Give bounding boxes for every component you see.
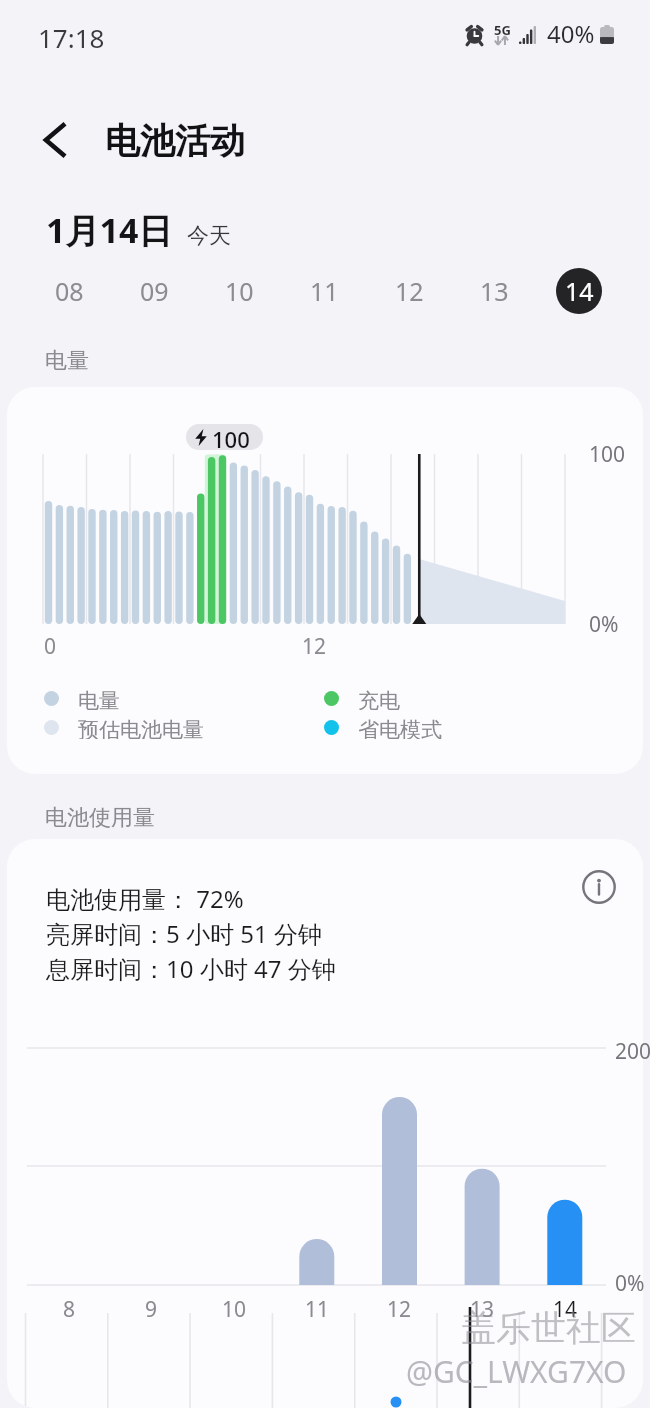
staticText: 200: [615, 1037, 650, 1066]
staticText: 100: [212, 424, 250, 450]
button[interactable]: 11: [301, 268, 347, 314]
staticText: 13: [480, 274, 509, 308]
staticText: 0: [44, 632, 57, 661]
staticText: 5G: [494, 21, 511, 39]
button[interactable]: 10: [216, 268, 262, 314]
button[interactable]: 12: [386, 268, 432, 314]
staticText: 12: [302, 632, 327, 661]
staticText: 14: [553, 1295, 578, 1321]
staticText: 1月14日: [46, 207, 173, 253]
staticText: 10: [225, 274, 254, 308]
staticText: 电池使用量： 72%: [46, 882, 244, 915]
staticText: 09: [140, 274, 169, 308]
staticText: 省电模式: [358, 717, 442, 739]
staticText: 电量: [45, 347, 89, 375]
staticText: 充电: [358, 688, 400, 710]
button[interactable]: 08: [46, 268, 92, 314]
staticText: @GC_LWXG7XO: [406, 1351, 627, 1392]
staticText: 电池使用量: [45, 804, 155, 832]
button[interactable]: 09: [131, 268, 177, 314]
staticText: 08: [55, 274, 84, 308]
staticText: 盖乐世社区: [461, 1306, 636, 1350]
staticText: 亮屏时间：5 小时 51 分钟: [46, 917, 322, 950]
staticText: 14: [565, 274, 594, 308]
staticText: 40%: [547, 17, 595, 50]
button[interactable]: 14: [556, 268, 602, 314]
staticText: 预估电池电量: [78, 717, 204, 739]
staticText: 12: [395, 274, 424, 308]
button[interactable]: Back: [28, 108, 84, 172]
staticText: 电池活动: [105, 119, 245, 163]
staticText: 息屏时间：10 小时 47 分钟: [46, 952, 336, 985]
staticText: 今天: [187, 222, 231, 250]
button[interactable]: Info: [582, 870, 616, 904]
staticText: 17:18: [38, 20, 105, 55]
staticText: 11: [305, 1295, 330, 1321]
staticText: 0%: [589, 610, 619, 639]
staticText: 12: [387, 1295, 412, 1321]
staticText: 13: [470, 1295, 495, 1321]
staticText: 8: [63, 1295, 76, 1321]
staticText: 11: [310, 274, 339, 308]
staticText: 电量: [78, 688, 120, 710]
staticText: 100: [589, 440, 626, 469]
staticText: 9: [145, 1295, 158, 1321]
staticText: 0%: [615, 1269, 645, 1298]
staticText: 10: [222, 1295, 247, 1321]
button[interactable]: 13: [471, 268, 517, 314]
